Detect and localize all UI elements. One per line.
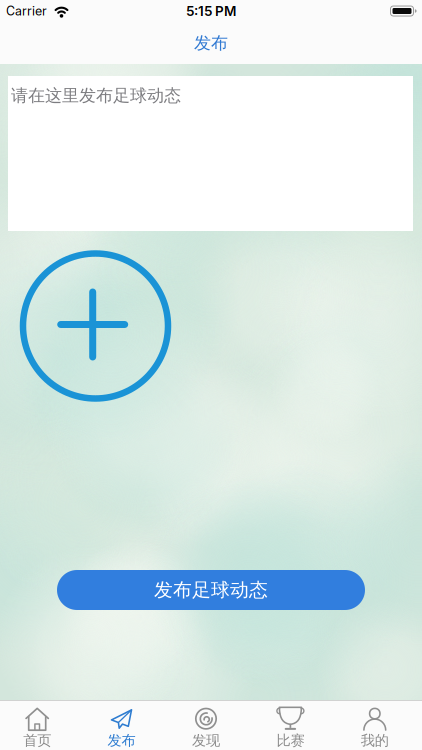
staticText: 发布足球动态	[154, 578, 268, 602]
staticText: 我的	[361, 731, 389, 749]
staticText: 发布	[194, 32, 228, 54]
button[interactable]: 请在这里发布足球动态	[0, 76, 422, 231]
staticText: 5:15 PM	[186, 3, 236, 19]
button[interactable]: 发现	[164, 701, 248, 750]
staticText: 首页	[23, 731, 51, 749]
staticText: 发现	[192, 731, 220, 749]
staticText: 请在这里发布足球动态	[11, 85, 181, 106]
staticText: 比赛	[276, 731, 304, 749]
staticText: Carrier	[6, 3, 47, 18]
button[interactable]: 我的	[333, 701, 417, 750]
button[interactable]: 发布	[79, 701, 164, 750]
button[interactable]: 发布足球动态	[57, 570, 365, 610]
staticText: 发布	[108, 731, 136, 749]
button[interactable]: 添加图片	[23, 253, 168, 398]
button[interactable]: 比赛	[248, 701, 333, 750]
button[interactable]: 首页	[0, 701, 79, 750]
